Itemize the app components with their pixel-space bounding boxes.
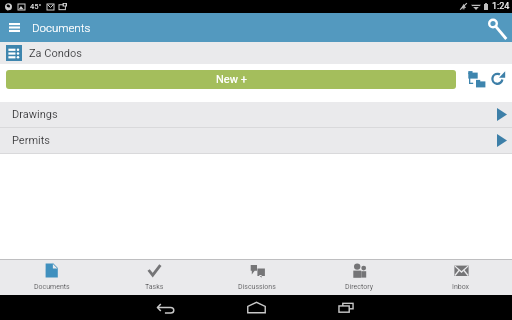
staticText: 1:24 [492,1,510,12]
button[interactable]: Tasks [103,260,206,295]
button[interactable]: Drawings [0,102,512,127]
button[interactable]: Open navigation drawer [0,13,28,42]
button[interactable]: Documents [0,260,103,295]
button[interactable]: Discussions [206,260,308,295]
staticText: Permits [12,134,51,147]
button[interactable]: Home [213,295,299,320]
staticText: Inbox [452,283,470,291]
staticText: 45° [30,2,42,11]
staticText: Documents [34,283,70,291]
staticText: Directory [345,283,373,291]
staticText: Discussions [238,283,276,291]
staticText: Drawings [12,108,58,121]
button[interactable]: Back [123,295,209,320]
button[interactable]: Folder tree [464,68,484,88]
button[interactable]: Za Condos [0,42,512,64]
staticText: Za Condos [29,47,82,60]
button[interactable]: Recent apps [303,295,389,320]
button[interactable]: Directory [308,260,410,295]
button[interactable]: Permits [0,128,512,153]
button[interactable]: New + [6,70,456,89]
staticText: New + [216,73,247,86]
staticText: Documents [32,21,91,34]
button[interactable]: Refresh [488,68,508,88]
button[interactable]: Search [482,13,512,42]
staticText: Tasks [145,283,164,291]
button[interactable]: Inbox [410,260,512,295]
